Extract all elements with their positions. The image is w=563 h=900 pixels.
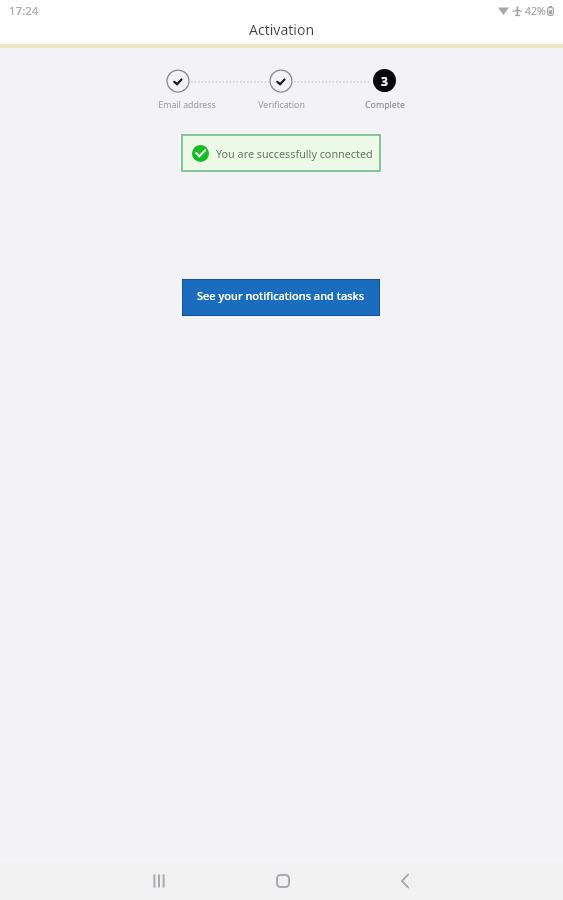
button[interactable]: 3 xyxy=(334,69,434,112)
button[interactable]: See your notifications and tasks xyxy=(182,279,380,316)
button[interactable]: Back xyxy=(381,862,429,900)
staticText: 42% xyxy=(525,4,546,18)
button[interactable]: Home xyxy=(259,862,307,900)
staticText: See your notifications and tasks xyxy=(197,288,365,303)
staticText: Complete xyxy=(365,99,405,111)
staticText: You are successfully connected xyxy=(216,146,373,161)
staticText: 3 xyxy=(381,73,388,89)
button[interactable]: Email address xyxy=(128,69,228,112)
staticText: Verification xyxy=(258,99,305,111)
button[interactable]: Recents xyxy=(135,862,183,900)
staticText: Activation xyxy=(249,20,315,39)
button[interactable]: Verification xyxy=(231,69,331,112)
staticText: Email address xyxy=(158,99,216,111)
staticText: 17:24 xyxy=(9,3,39,19)
button[interactable]: You are successfully connected xyxy=(181,134,381,172)
